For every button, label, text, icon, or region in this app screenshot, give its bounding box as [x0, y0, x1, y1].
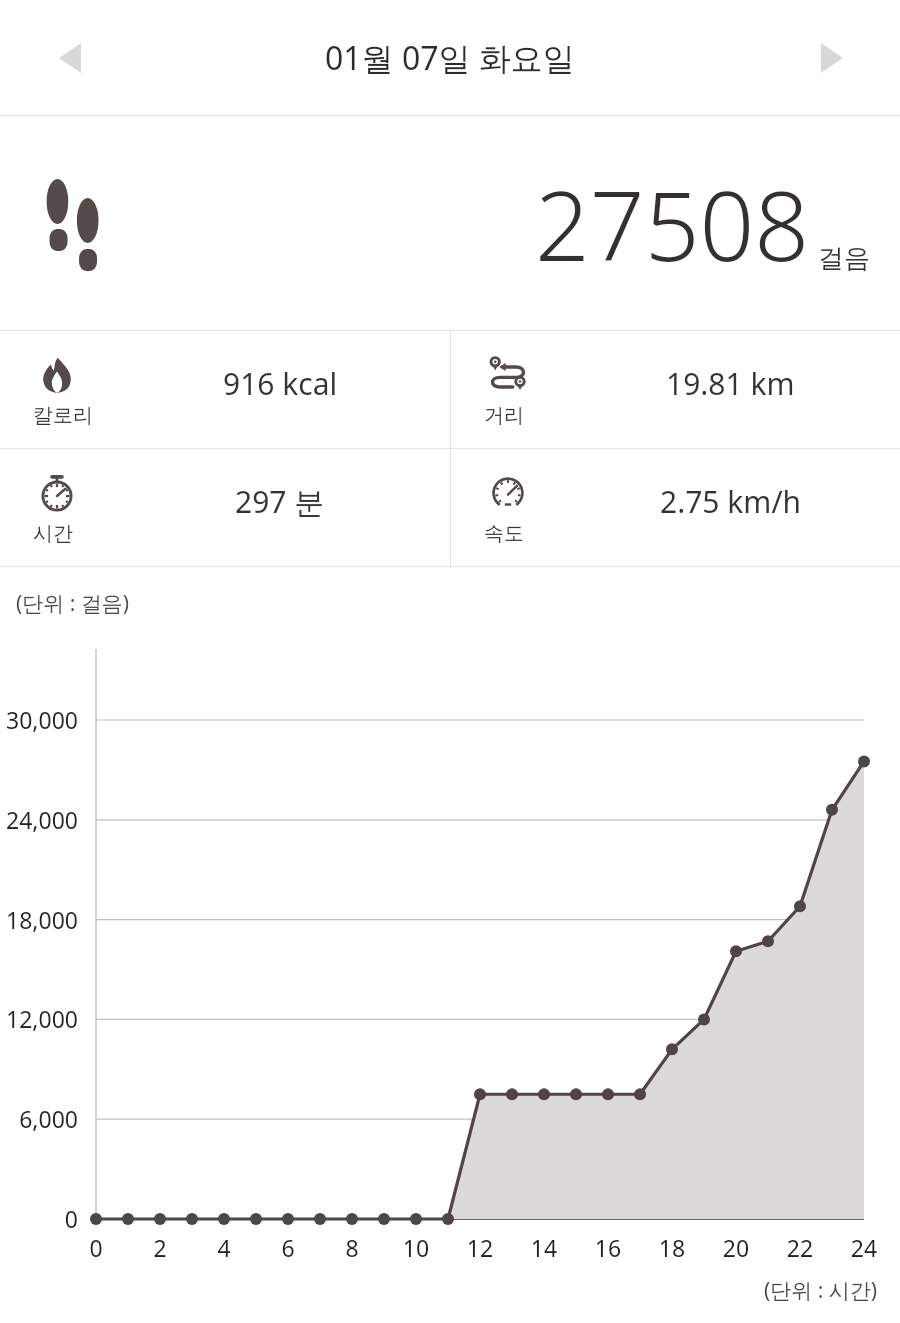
staticText: 18,000: [0, 904, 78, 935]
staticText: 18: [652, 1232, 692, 1263]
staticText: 걸음: [818, 242, 870, 275]
staticText: 14: [524, 1232, 564, 1263]
staticText: 0: [0, 1203, 78, 1234]
staticText: 4: [204, 1232, 244, 1263]
staticText: 8: [332, 1232, 372, 1263]
staticText: (단위 : 시간): [764, 1276, 878, 1305]
staticText: 시간: [33, 521, 73, 546]
staticText: 12: [460, 1232, 500, 1263]
staticText: 01월 07일 화요일: [325, 36, 575, 80]
staticText: 27508: [535, 158, 810, 289]
staticText: 2: [140, 1232, 180, 1263]
staticText: 칼로리: [33, 403, 93, 428]
button[interactable]: Next day: [802, 28, 862, 88]
button[interactable]: 속도: [451, 449, 900, 566]
staticText: 2.75 km/h: [660, 481, 802, 522]
staticText: (단위 : 걸음): [16, 589, 130, 618]
staticText: 6: [268, 1232, 308, 1263]
staticText: 0: [76, 1232, 116, 1263]
button[interactable]: 시간: [0, 449, 450, 566]
staticText: 거리: [484, 403, 524, 428]
staticText: 20: [716, 1232, 756, 1263]
staticText: 6,000: [0, 1103, 78, 1134]
staticText: 30,000: [0, 704, 78, 735]
staticText: 24,000: [0, 804, 78, 835]
staticText: 916 kcal: [223, 363, 338, 404]
staticText: 19.81 km: [666, 363, 795, 404]
staticText: 속도: [484, 521, 524, 546]
button[interactable]: 칼로리: [0, 331, 450, 448]
staticText: 12,000: [0, 1003, 78, 1034]
staticText: 297 분: [235, 481, 325, 522]
button[interactable]: 27508: [0, 116, 900, 330]
staticText: 22: [780, 1232, 820, 1263]
button[interactable]: Previous day: [40, 28, 100, 88]
staticText: 16: [588, 1232, 628, 1263]
staticText: 10: [396, 1232, 436, 1263]
button[interactable]: 거리: [451, 331, 900, 448]
staticText: 24: [844, 1232, 884, 1263]
